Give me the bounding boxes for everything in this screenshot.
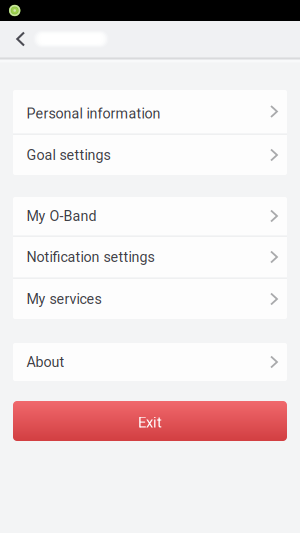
button[interactable]: My O-Band — [13, 197, 287, 235]
button[interactable]: Notification settings — [13, 237, 287, 277]
staticText: Personal information — [26, 105, 160, 122]
staticText: My O-Band — [26, 208, 96, 224]
staticText: Notification settings — [26, 249, 154, 265]
button[interactable]: Exit — [13, 401, 287, 441]
button[interactable]: Back — [8, 20, 33, 58]
button[interactable]: Personal information — [13, 90, 287, 133]
staticText: Goal settings — [26, 147, 110, 163]
button[interactable]: Goal settings — [13, 135, 287, 175]
button[interactable]: About — [13, 343, 287, 381]
staticText: About — [26, 354, 64, 370]
staticText: My services — [26, 291, 101, 307]
staticText: Exit — [138, 414, 162, 431]
button[interactable]: My services — [13, 279, 287, 319]
